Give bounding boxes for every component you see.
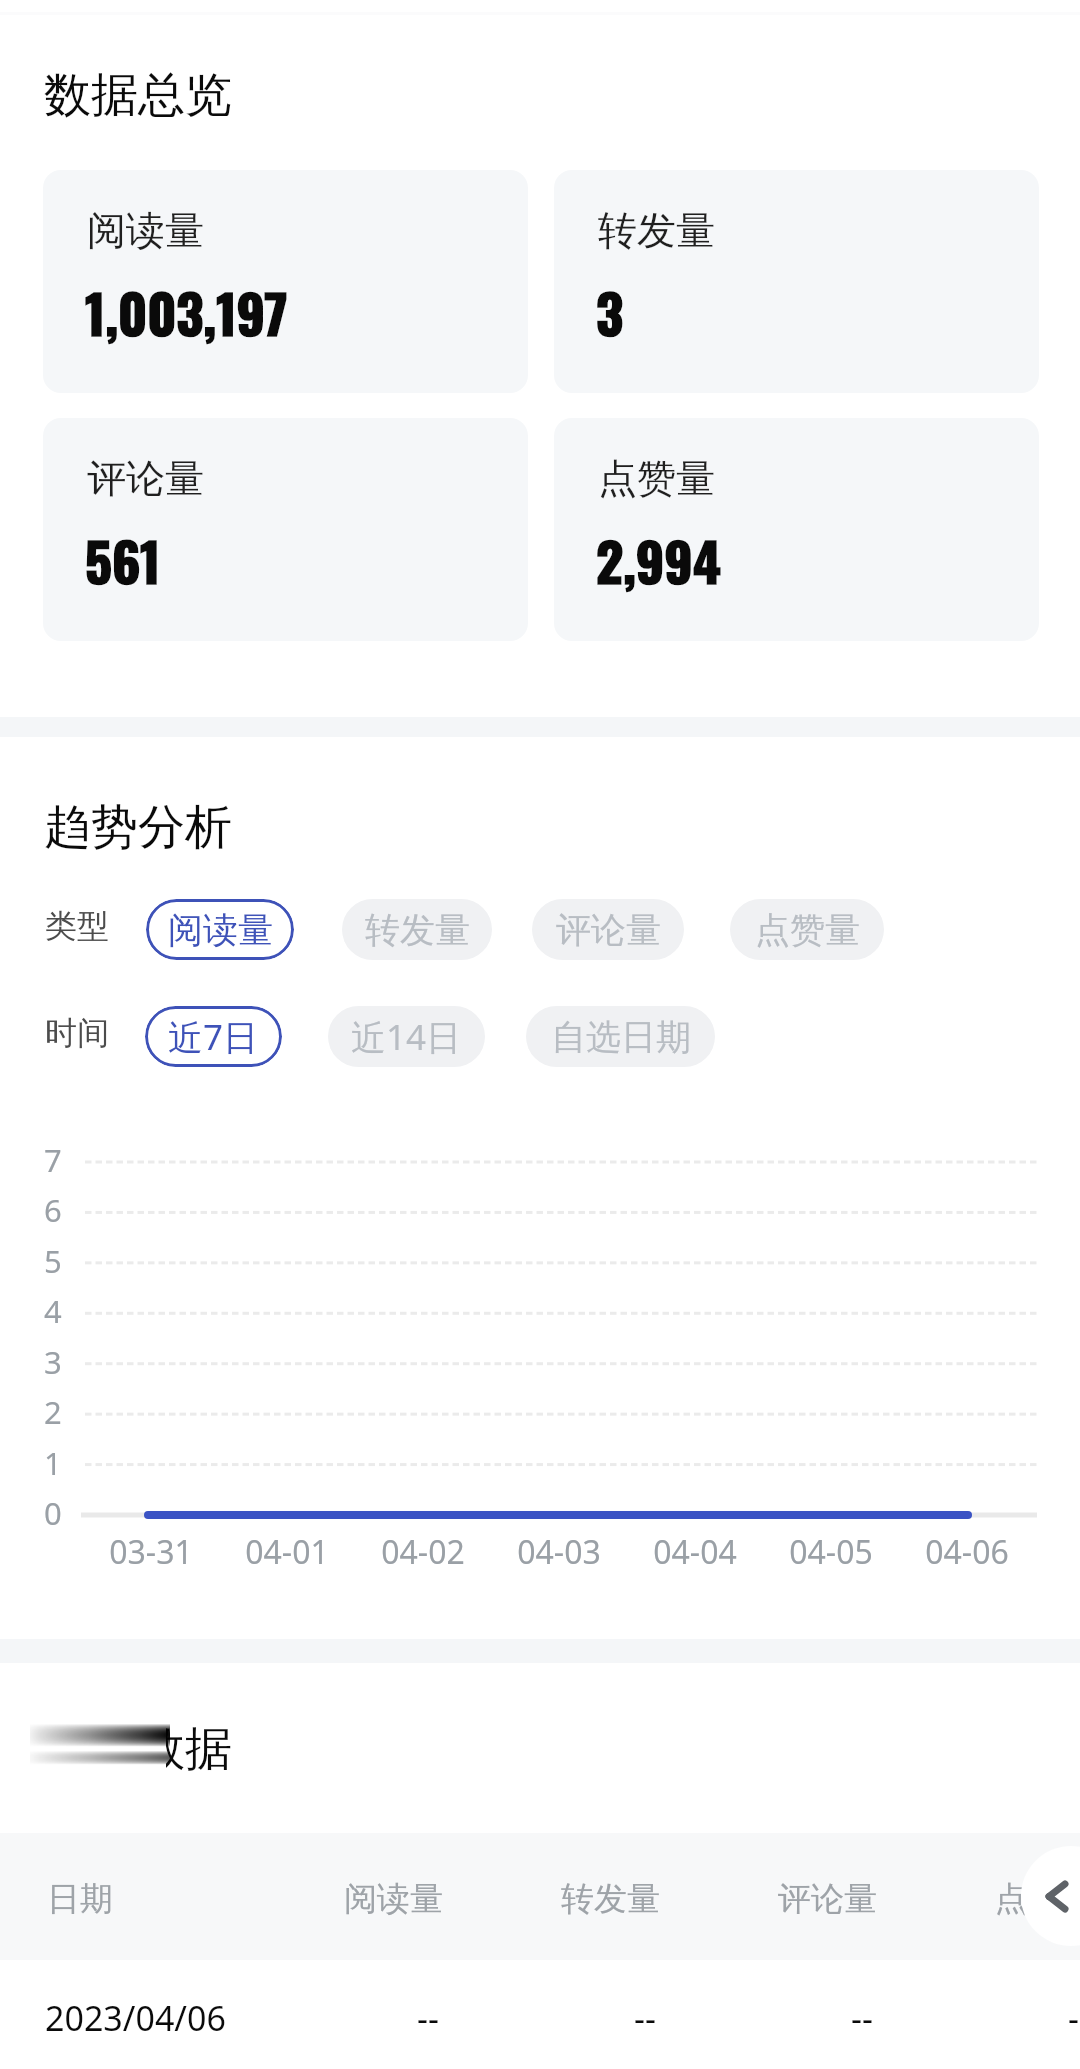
staticText: 0: [44, 1492, 62, 1534]
staticText: 6: [44, 1189, 62, 1231]
staticText: 趋势分析: [44, 798, 232, 857]
staticText: 评论量: [778, 1878, 877, 1920]
staticText: 04-02: [381, 1530, 465, 1574]
button[interactable]: 评论量: [43, 418, 528, 641]
button[interactable]: 点赞量: [730, 899, 884, 960]
staticText: 03-31: [109, 1530, 193, 1574]
staticText: --: [851, 1995, 873, 2041]
staticText: 04-04: [653, 1530, 737, 1574]
staticText: 04-01: [245, 1530, 329, 1574]
button[interactable]: 点赞量: [554, 418, 1039, 641]
button[interactable]: 近14日: [328, 1006, 485, 1067]
button[interactable]: 评论量: [532, 899, 684, 960]
button[interactable]: 2023/04/06: [0, 1960, 1080, 2069]
staticText: 3: [596, 273, 624, 352]
staticText: 类型: [45, 906, 109, 946]
staticText: 转发量: [598, 206, 715, 255]
staticText: 1,003,197: [85, 273, 288, 352]
staticText: 近14日: [351, 1013, 462, 1061]
button[interactable]: 阅读量: [43, 170, 528, 393]
staticText: 2,994: [596, 521, 721, 600]
staticText: --: [1068, 1995, 1080, 2041]
staticText: 04-03: [517, 1530, 601, 1574]
staticText: 点赞量: [598, 454, 715, 503]
staticText: 1: [44, 1442, 62, 1484]
staticText: 4: [44, 1290, 62, 1332]
button[interactable]: 阅读量: [146, 899, 294, 960]
staticText: 点赞量: [755, 908, 860, 952]
staticText: 2023/04/06: [45, 1995, 226, 2041]
button[interactable]: 转发量: [554, 170, 1039, 393]
staticText: 2: [44, 1391, 62, 1433]
staticText: 自选日期: [551, 1015, 691, 1059]
staticText: 点赞量: [995, 1878, 1080, 1920]
staticText: 561: [85, 521, 161, 600]
staticText: 3: [44, 1341, 62, 1383]
button[interactable]: 自选日期: [526, 1006, 715, 1067]
staticText: 时间: [45, 1013, 109, 1053]
button[interactable]: Previous page: [1021, 1846, 1080, 1946]
staticText: 阅读量: [168, 908, 273, 952]
staticText: 04-06: [925, 1530, 1009, 1574]
staticText: 近7日: [168, 1013, 259, 1061]
staticText: --: [417, 1995, 439, 2041]
staticText: 每日数据: [44, 1720, 232, 1779]
staticText: 7: [44, 1139, 62, 1181]
staticText: 日期: [47, 1878, 113, 1920]
button[interactable]: 转发量: [342, 899, 492, 960]
staticText: --: [634, 1995, 656, 2041]
staticText: 数据总览: [44, 66, 232, 125]
staticText: 转发量: [561, 1878, 660, 1920]
staticText: 阅读量: [344, 1878, 443, 1920]
staticText: 04-05: [789, 1530, 873, 1574]
staticText: 评论量: [87, 454, 204, 503]
staticText: 评论量: [556, 908, 661, 952]
button[interactable]: 近7日: [145, 1006, 282, 1067]
staticText: 5: [44, 1240, 62, 1282]
staticText: 转发量: [365, 908, 470, 952]
staticText: 阅读量: [87, 206, 204, 255]
